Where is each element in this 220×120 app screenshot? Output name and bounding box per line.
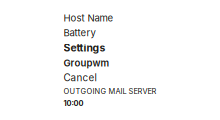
staticText: Host Name	[63, 12, 113, 24]
staticText: Settings	[63, 41, 105, 54]
staticText: OUTGOING MAIL SERVER	[63, 87, 156, 96]
staticText: 10:00	[63, 99, 83, 108]
staticText: Groupwm	[63, 57, 109, 69]
staticText: Cancel	[63, 72, 96, 84]
staticText: Battery	[63, 27, 95, 38]
